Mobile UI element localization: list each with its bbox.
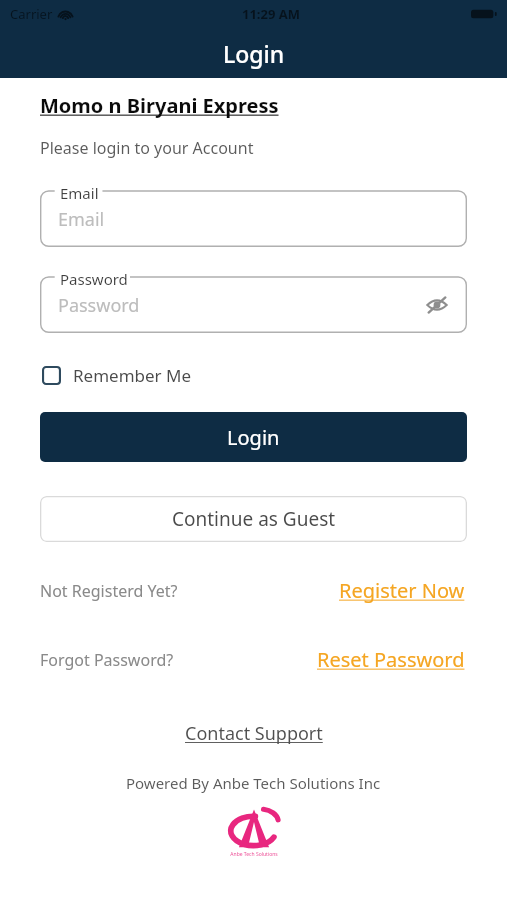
staticText: Not Registerd Yet? — [40, 580, 178, 602]
staticText: 11:29 AM — [242, 5, 301, 23]
button[interactable]: Toggle password visibility — [419, 287, 455, 323]
staticText: Email — [60, 183, 99, 203]
staticText: Remember Me — [73, 364, 192, 387]
staticText: Carrier — [10, 5, 53, 23]
button[interactable]: Login — [40, 412, 467, 462]
staticText: Login — [223, 38, 285, 69]
staticText: Password — [60, 269, 128, 289]
button[interactable]: Password — [40, 277, 467, 333]
staticText: Continue as Guest — [172, 506, 336, 532]
staticText: Reset Password — [317, 646, 465, 673]
staticText: Please login to your Account — [40, 137, 254, 159]
staticText: Anbe Tech Solutions — [230, 851, 278, 858]
button[interactable]: Reset Password — [315, 643, 467, 676]
staticText: Register Now — [339, 577, 465, 604]
staticText: Contact Support — [185, 721, 323, 746]
staticText: Login — [227, 424, 280, 451]
staticText: Email — [58, 207, 105, 232]
staticText: Forgot Password? — [40, 649, 174, 671]
button[interactable]: Remember Me — [40, 360, 194, 391]
button[interactable]: Register Now — [337, 574, 467, 607]
staticText: Powered By Anbe Tech Solutions Inc — [126, 773, 381, 793]
staticText: Momo n Biryani Express — [40, 92, 279, 119]
button[interactable]: Continue as Guest — [40, 496, 467, 542]
staticText: Password — [58, 293, 140, 318]
button[interactable]: Email — [40, 191, 467, 247]
button[interactable]: Contact Support — [179, 718, 329, 749]
